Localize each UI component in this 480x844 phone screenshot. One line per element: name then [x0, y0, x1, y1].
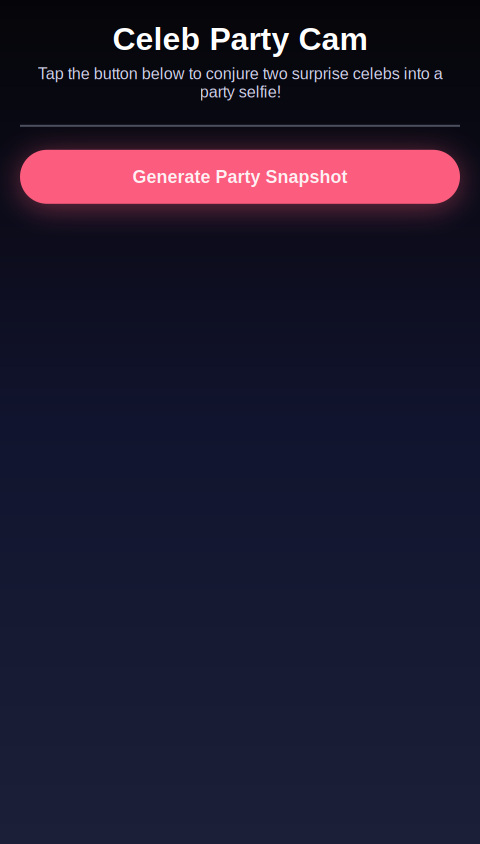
button[interactable]: Generate Party Snapshot	[20, 150, 460, 204]
staticText: Celeb Party Cam	[112, 21, 367, 57]
staticText: Generate Party Snapshot	[132, 167, 347, 187]
staticText: Tap the button below to conjure two surp…	[37, 65, 442, 101]
